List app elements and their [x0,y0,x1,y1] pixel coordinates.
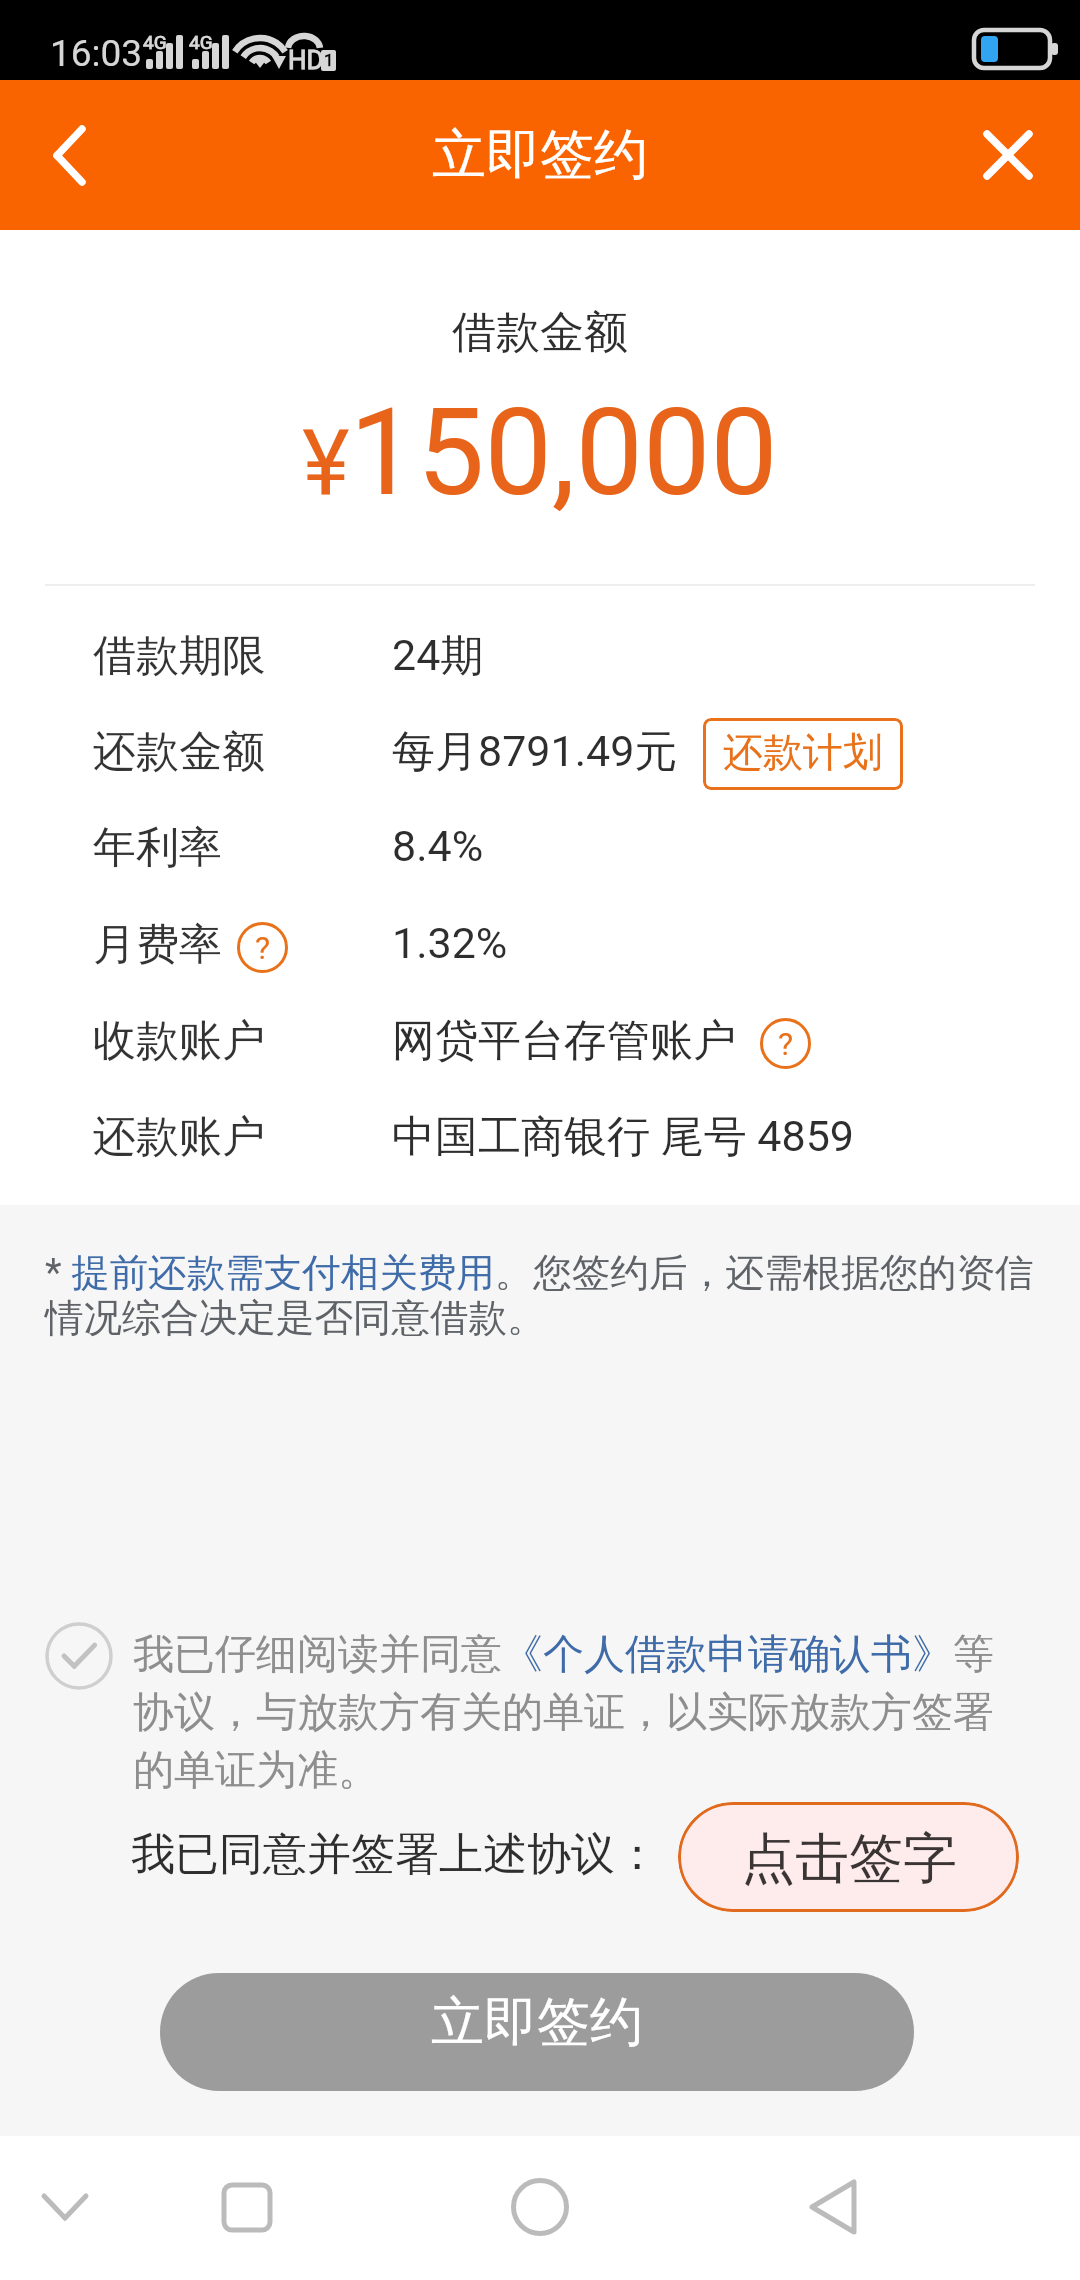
button[interactable]: 同意协议 [45,1622,113,1690]
button[interactable]: 最近任务 [192,2172,302,2242]
staticText: 点击签字 [741,1825,957,1893]
button[interactable]: 返回 [9,80,129,230]
button[interactable]: 点击签字 [678,1802,1019,1912]
button[interactable]: 说明 [760,1018,811,1069]
staticText: 1 [324,50,334,70]
button[interactable]: 收起 [10,2172,120,2242]
staticText: 8.4% [392,821,484,871]
staticText: 4G [189,31,213,53]
staticText: 立即签约 [431,1989,643,2056]
staticText: 还款计划 [723,727,883,777]
staticText: 借款金额 [0,305,1080,360]
staticText: 收款账户 [93,1014,265,1068]
staticText: 立即签约 [432,121,648,189]
staticText: 月费率 [93,918,222,972]
button[interactable]: 说明 [237,922,288,973]
staticText: 我已仔细阅读并同意《个人借款申请确认书》等协议，与放款方有关的单证，以实际放款方… [133,1629,1013,1796]
staticText: 网贷平台存管账户 [392,1014,736,1068]
button[interactable]: 立即签约 [160,1973,914,2091]
button[interactable]: 返回 [778,2172,888,2242]
staticText: 借款期限 [93,629,265,683]
button[interactable]: 主屏幕 [485,2172,595,2242]
button[interactable]: 关闭 [936,80,1080,230]
staticText: 24期 [392,629,484,683]
staticText: 我已同意并签署上述协议： [131,1827,659,1882]
staticText: 年利率 [93,821,222,875]
button[interactable]: 个人借款申请确认书 [521,1629,951,1677]
staticText: 4G [143,31,167,53]
staticText: ? [255,929,271,967]
staticText: 还款账户 [93,1110,265,1164]
staticText: 16:03 [50,32,143,75]
staticText: ? [778,1025,794,1063]
staticText: HD [288,45,324,75]
staticText: ¥150,000 [0,383,1080,524]
staticText: * 提前还款需支付相关费用。您签约后，还需根据您的资信情况综合决定是否同意借款。 [45,1249,1047,1342]
staticText: 1.32% [392,918,508,968]
staticText: 中国工商银行 尾号 4859 [392,1110,854,1164]
staticText: 每月8791.49元 [392,725,678,779]
staticText: 还款金额 [93,725,265,779]
button[interactable]: 还款计划 [703,718,903,790]
button[interactable]: 提前还款需支付相关费用 [72,1250,499,1294]
